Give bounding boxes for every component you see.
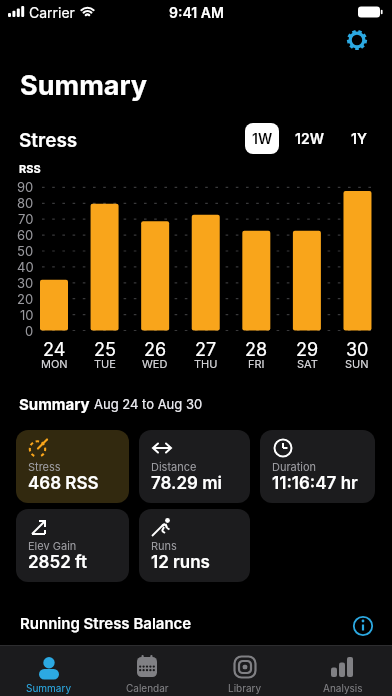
staticText: 0 — [25, 323, 34, 339]
staticText: Aug 24 to Aug 30 — [94, 396, 203, 412]
staticText: Distance — [151, 460, 197, 473]
staticText: 25 — [94, 339, 116, 361]
staticText: Calendar — [126, 682, 169, 694]
button[interactable]: Library — [196, 646, 294, 696]
button[interactable]: 1Y — [338, 123, 380, 154]
staticText: THU — [194, 357, 218, 370]
staticText: 29 — [296, 339, 319, 361]
button[interactable]: Duration — [260, 430, 375, 503]
staticText: Stress — [28, 460, 61, 473]
button[interactable]: 12W — [288, 123, 330, 154]
staticText: 10 — [20, 307, 34, 323]
staticText: 60 — [17, 227, 34, 243]
staticText: 9:41 AM — [169, 4, 224, 21]
staticText: Carrier — [29, 4, 75, 21]
staticText: Running Stress Balance — [20, 614, 192, 632]
button[interactable]: Elev Gain — [16, 509, 129, 582]
button[interactable] — [345, 28, 369, 52]
staticText: 27 — [195, 339, 217, 361]
staticText: 80 — [17, 195, 34, 211]
staticText: Runs — [151, 539, 177, 552]
staticText: RSS — [19, 162, 41, 175]
staticText: 11:16:47 hr — [272, 473, 358, 494]
staticText: 468 RSS — [28, 473, 99, 494]
staticText: 30 — [346, 339, 369, 361]
button[interactable]: 1W — [245, 123, 279, 154]
staticText: Stress — [19, 129, 78, 152]
staticText: WED — [142, 357, 168, 370]
staticText: 12W — [295, 130, 324, 147]
staticText: 12 runs — [151, 552, 210, 573]
staticText: 30 — [17, 275, 34, 291]
staticText: 26 — [144, 339, 167, 361]
staticText: 2852 ft — [28, 552, 88, 573]
button[interactable]: Stress — [16, 430, 129, 503]
staticText: 90 — [17, 179, 34, 195]
staticText: 24 — [43, 339, 66, 361]
button[interactable]: Summary — [0, 646, 98, 696]
button[interactable]: Calendar — [98, 646, 196, 696]
button[interactable]: Distance — [139, 430, 250, 503]
staticText: Summary — [20, 69, 148, 102]
staticText: Summary — [19, 395, 90, 413]
staticText: Library — [228, 682, 262, 694]
staticText: Summary — [26, 682, 72, 694]
staticText: 70 — [18, 211, 34, 227]
staticText: Analysis — [323, 682, 363, 694]
staticText: TUE — [94, 357, 116, 370]
staticText: MON — [41, 357, 68, 370]
button[interactable]: Analysis — [294, 646, 392, 696]
staticText: SAT — [297, 357, 318, 370]
staticText: 20 — [17, 291, 34, 307]
staticText: 1W — [252, 130, 273, 147]
staticText: 40 — [17, 259, 34, 275]
button[interactable] — [352, 615, 374, 637]
staticText: 50 — [17, 243, 34, 259]
staticText: FRI — [248, 357, 265, 370]
staticText: SUN — [345, 357, 369, 370]
staticText: Elev Gain — [28, 539, 77, 552]
staticText: Duration — [272, 460, 317, 473]
staticText: 28 — [245, 339, 268, 361]
staticText: 78.29 mi — [151, 473, 222, 494]
staticText: 1Y — [351, 130, 367, 147]
button[interactable]: Runs — [139, 509, 250, 582]
